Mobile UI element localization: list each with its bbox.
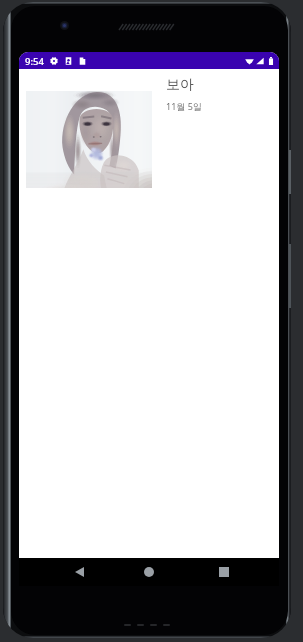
button[interactable]: 보아 xyxy=(19,69,279,197)
button[interactable]: Back xyxy=(53,558,106,586)
staticText: 9:54 xyxy=(25,55,44,68)
staticText: 11월 5일 xyxy=(166,100,202,112)
button[interactable]: Home xyxy=(123,558,175,586)
button[interactable]: Recent apps xyxy=(198,558,249,586)
staticText: 보아 xyxy=(166,76,194,94)
